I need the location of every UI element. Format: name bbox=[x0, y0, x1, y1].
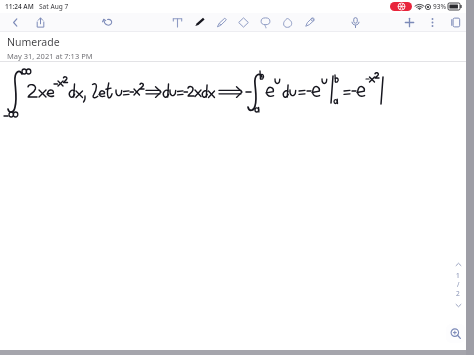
staticText: 1 bbox=[456, 271, 460, 280]
button[interactable]: Pages bbox=[448, 15, 462, 29]
button[interactable]: Previous page bbox=[452, 258, 464, 270]
button[interactable]: Eraser bbox=[236, 15, 250, 29]
staticText: Sat Aug 7 bbox=[39, 2, 69, 11]
button[interactable]: Text tool bbox=[170, 15, 184, 29]
button[interactable]: Lasso bbox=[258, 15, 272, 29]
staticText: 93% bbox=[433, 2, 446, 11]
button[interactable]: Add bbox=[402, 15, 416, 29]
button[interactable]: Undo bbox=[100, 15, 114, 29]
button[interactable]: Pen bbox=[192, 15, 206, 29]
button[interactable]: Share bbox=[33, 15, 47, 29]
button[interactable]: Next page bbox=[452, 299, 464, 311]
staticText: / bbox=[457, 280, 460, 289]
button[interactable]: More options bbox=[425, 15, 439, 29]
staticText: May 31, 2021 at 7:13 PM bbox=[7, 51, 93, 61]
staticText: Numerade bbox=[7, 35, 60, 49]
button[interactable]: Highlighter bbox=[214, 15, 228, 29]
button[interactable]: Microphone bbox=[348, 15, 362, 29]
button[interactable]: Smudge bbox=[280, 15, 294, 29]
button[interactable]: Color picker bbox=[302, 15, 316, 29]
staticText: 2 bbox=[456, 289, 460, 298]
button[interactable]: Back bbox=[8, 15, 22, 29]
button[interactable]: Zoom bbox=[446, 324, 465, 343]
staticText: 11:24 AM bbox=[5, 2, 34, 11]
